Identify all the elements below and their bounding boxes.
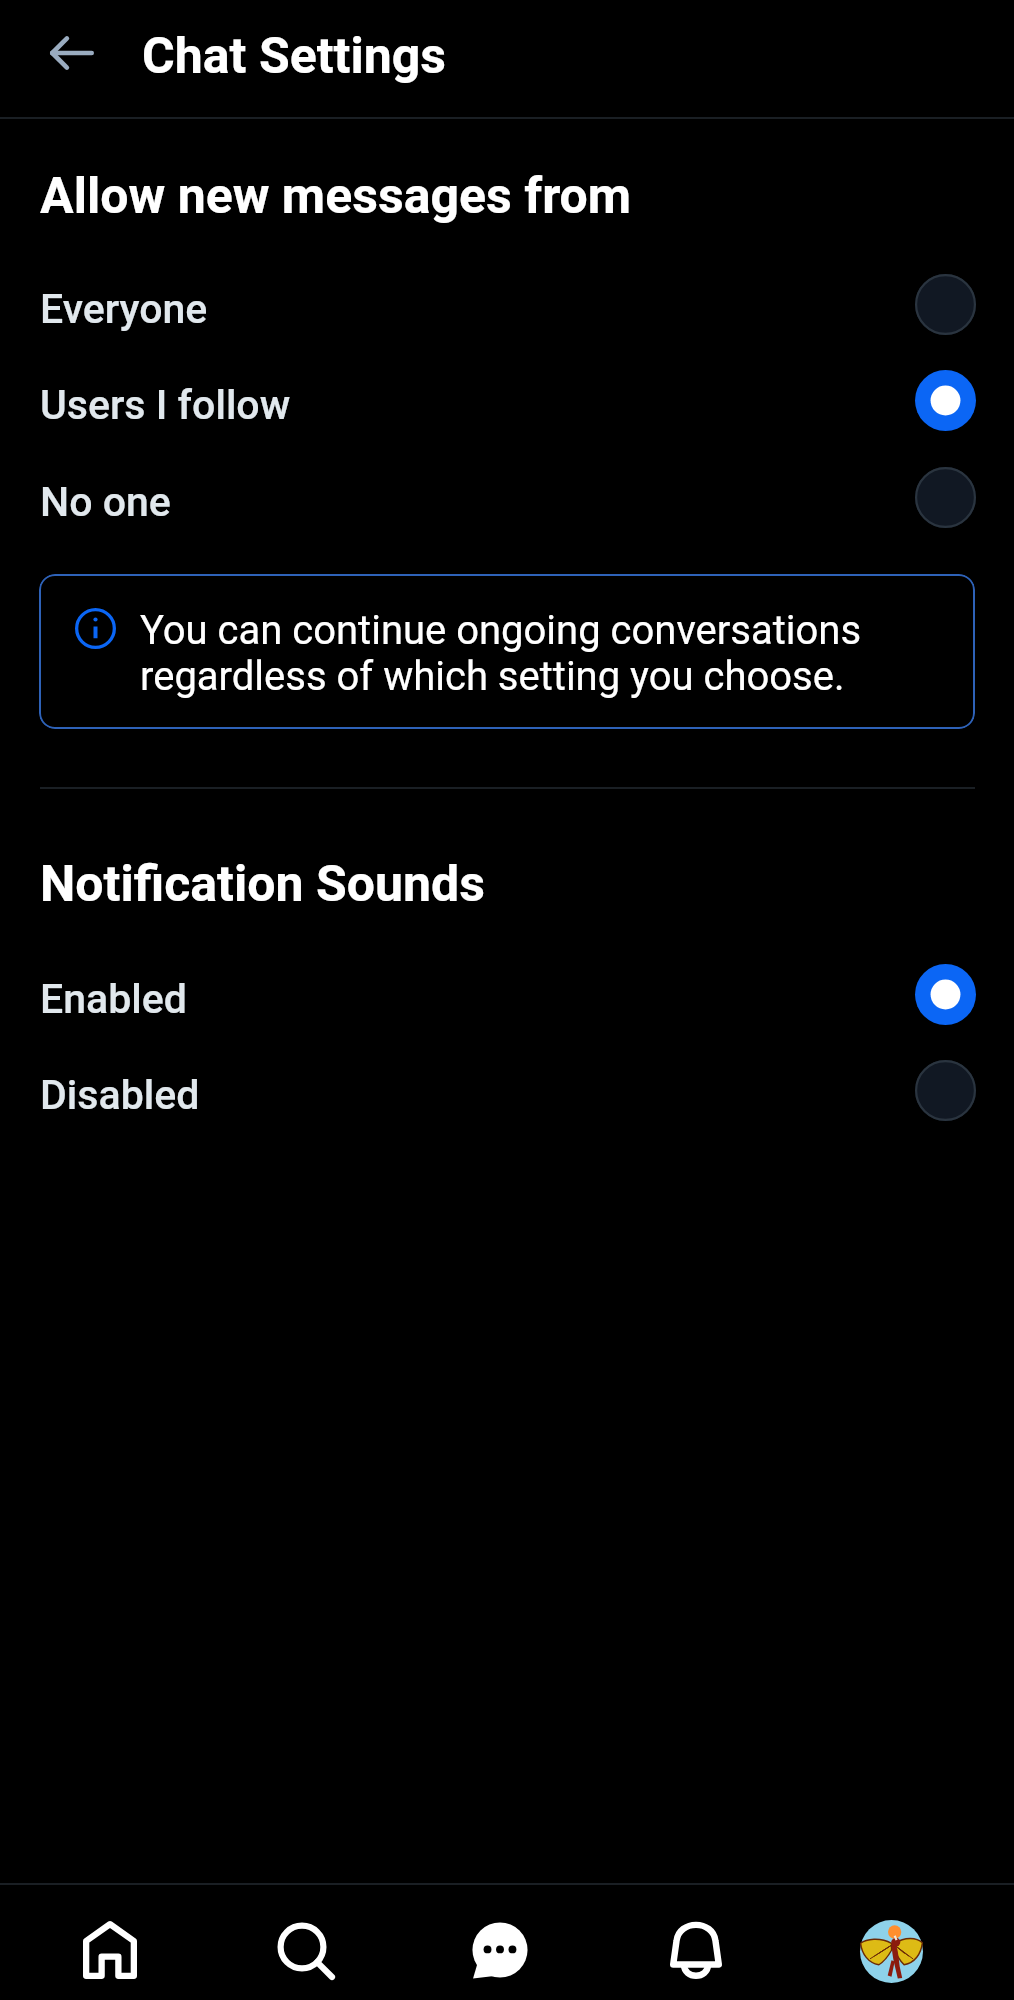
button[interactable]: Messages (400, 1885, 600, 2000)
button[interactable]: No one (0, 449, 1014, 545)
staticText: Notification Sounds (40, 855, 485, 914)
button[interactable]: Search (206, 1885, 406, 2000)
staticText: Chat Settings (142, 27, 447, 86)
staticText: Allow new messages from (40, 167, 632, 226)
button[interactable]: Disabled (0, 1042, 1014, 1138)
button[interactable]: Back (38, 19, 106, 87)
staticText: No one (40, 478, 171, 526)
staticText: Everyone (40, 285, 208, 333)
staticText: Enabled (40, 975, 187, 1023)
staticText: Disabled (40, 1071, 200, 1119)
button[interactable]: Users I follow (0, 352, 1014, 448)
button[interactable]: Everyone (0, 256, 1014, 352)
staticText: Users I follow (40, 381, 291, 429)
button[interactable]: Home (10, 1885, 210, 2000)
button[interactable]: Enabled (0, 946, 1014, 1042)
button[interactable]: Profile (791, 1885, 991, 2000)
button[interactable]: Notifications (596, 1885, 796, 2000)
staticText: You can continue ongoing conversations r… (140, 607, 930, 700)
